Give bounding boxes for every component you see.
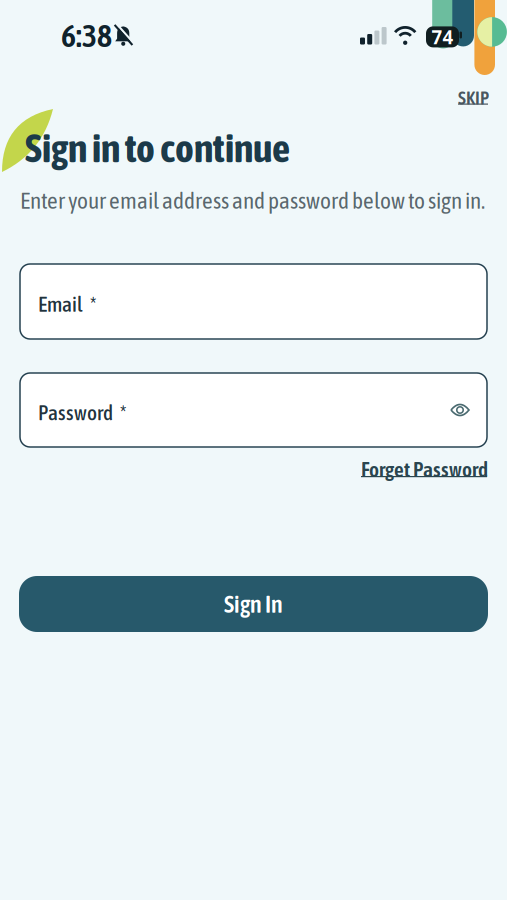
- staticText: Enter your email address and password be…: [20, 187, 485, 214]
- staticText: *: [120, 400, 126, 425]
- button[interactable]: Email, required: [20, 264, 487, 339]
- staticText: Forget Password: [361, 457, 488, 481]
- button[interactable]: SKIP: [458, 87, 488, 105]
- button[interactable]: Sign In: [19, 576, 488, 632]
- staticText: 74: [431, 24, 453, 49]
- staticText: Email: [38, 292, 83, 316]
- staticText: Sign In: [224, 590, 283, 618]
- staticText: Sign in to continue: [25, 125, 290, 171]
- staticText: SKIP: [458, 87, 489, 108]
- button[interactable]: Password, required: [20, 373, 487, 447]
- staticText: *: [90, 292, 96, 316]
- staticText: 6:38: [61, 17, 112, 54]
- button[interactable]: Show password: [450, 403, 470, 416]
- staticText: Password: [38, 400, 113, 425]
- button[interactable]: Forget Password: [361, 457, 485, 478]
